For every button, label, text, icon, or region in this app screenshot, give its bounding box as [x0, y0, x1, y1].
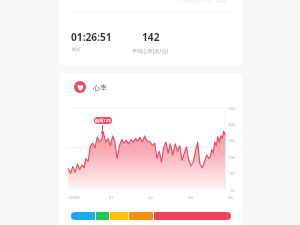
staticText: 时长: [72, 47, 81, 52]
staticText: 156: [228, 138, 235, 143]
staticText: 252: [228, 106, 235, 111]
button[interactable]: 平均配速 6'12" 配速: [59, 0, 242, 66]
staticText: 86: [228, 195, 233, 201]
button[interactable]: [71, 212, 231, 220]
staticText: 00:00: [69, 195, 80, 201]
other: Peak heart rate: [94, 117, 112, 124]
button[interactable]: 心率: [74, 81, 107, 93]
button[interactable]: 01:26:51: [71, 30, 112, 52]
staticText: 60: [230, 171, 235, 176]
staticText: 42: [148, 195, 153, 201]
staticText: 01:26:51: [71, 30, 112, 44]
staticText: 心率: [93, 83, 107, 92]
staticText: 21: [109, 195, 114, 201]
button[interactable]: 142: [142, 30, 179, 54]
staticText: 平均心率(次/分): [132, 47, 169, 54]
staticText: 142: [142, 30, 160, 44]
staticText: 108: [228, 155, 235, 160]
staticText: 204: [228, 122, 235, 127]
staticText: 平均配速 6'12" 配速: [179, 0, 226, 4]
staticText: 12: [230, 188, 235, 193]
staticText: 最高173: [95, 118, 111, 124]
staticText: 64: [188, 195, 193, 201]
